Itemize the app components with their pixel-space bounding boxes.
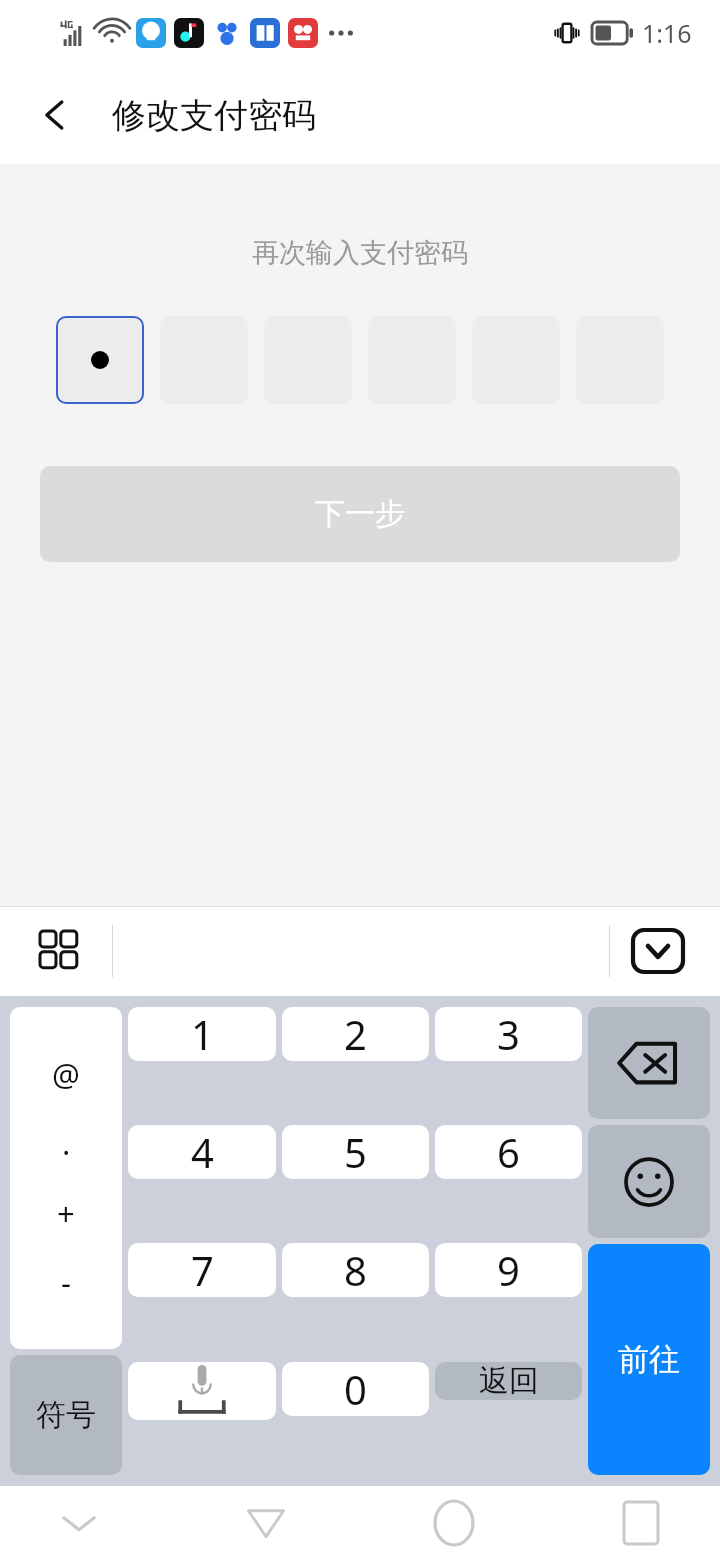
- button[interactable]: Emoji: [588, 1125, 710, 1238]
- button[interactable]: 8: [282, 1243, 429, 1297]
- staticText: 1: [191, 1007, 214, 1061]
- button[interactable]: Home: [415, 1486, 493, 1560]
- staticText: 0: [344, 1362, 367, 1416]
- staticText: 下一步: [315, 495, 405, 533]
- button[interactable]: 2: [282, 1007, 429, 1061]
- button[interactable]: @: [10, 1007, 122, 1349]
- button[interactable]: 0: [282, 1362, 429, 1416]
- button[interactable]: 下一步: [40, 466, 680, 562]
- staticText: 9: [497, 1243, 520, 1297]
- button[interactable]: 返回: [435, 1362, 582, 1400]
- button[interactable]: Hide keyboard: [622, 915, 694, 987]
- staticText: .: [62, 1122, 71, 1164]
- button[interactable]: Voice input: [128, 1362, 276, 1420]
- staticText: 5: [344, 1125, 367, 1179]
- staticText: 3: [497, 1007, 520, 1061]
- staticText: 2: [344, 1007, 367, 1061]
- button[interactable]: Back: [227, 1486, 305, 1560]
- button[interactable]: 5: [282, 1125, 429, 1179]
- button[interactable]: Recents: [602, 1486, 680, 1560]
- staticText: @: [52, 1053, 80, 1095]
- staticText: 1:16: [642, 16, 692, 50]
- staticText: 前往: [618, 1340, 680, 1379]
- button[interactable]: Backspace: [588, 1007, 710, 1119]
- staticText: 4: [191, 1125, 214, 1179]
- button[interactable]: 1: [128, 1007, 276, 1061]
- staticText: 符号: [36, 1396, 96, 1434]
- button[interactable]: 4: [128, 1125, 276, 1179]
- button[interactable]: 前往: [588, 1244, 710, 1475]
- staticText: 8: [344, 1243, 367, 1297]
- button[interactable]: Back: [24, 84, 86, 146]
- staticText: +: [57, 1192, 75, 1234]
- button[interactable]: 7: [128, 1243, 276, 1297]
- staticText: 6: [497, 1125, 520, 1179]
- button[interactable]: 9: [435, 1243, 582, 1297]
- staticText: -: [61, 1261, 71, 1303]
- staticText: 返回: [479, 1362, 539, 1400]
- button[interactable]: PIN digit 1: [56, 316, 144, 404]
- button[interactable]: Hide keyboard: [40, 1486, 118, 1560]
- button[interactable]: 符号: [10, 1355, 122, 1475]
- button[interactable]: 6: [435, 1125, 582, 1179]
- button[interactable]: 3: [435, 1007, 582, 1061]
- staticText: 7: [191, 1243, 214, 1297]
- button[interactable]: Keyboard layouts: [24, 915, 96, 987]
- staticText: 再次输入支付密码: [0, 236, 720, 270]
- staticText: 修改支付密码: [112, 94, 316, 137]
